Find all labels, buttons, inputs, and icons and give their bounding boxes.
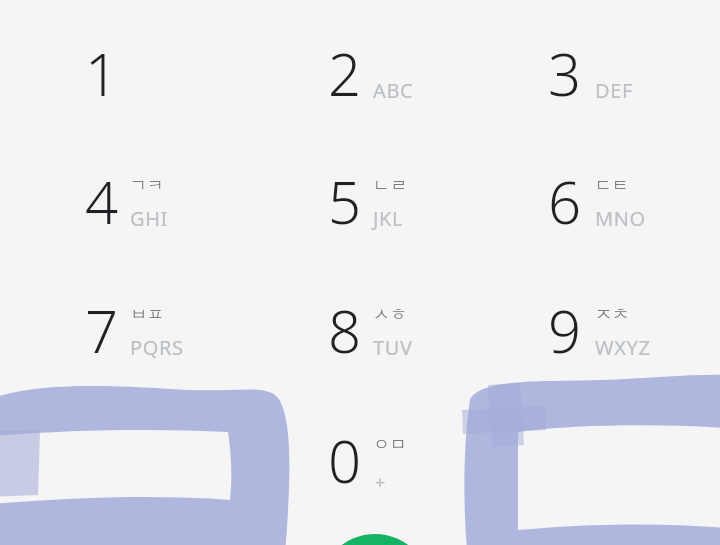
button[interactable] — [500, 398, 720, 526]
button[interactable] — [500, 139, 720, 267]
button[interactable] — [37, 398, 269, 526]
button[interactable] — [500, 268, 720, 396]
button[interactable] — [280, 139, 512, 267]
button[interactable] — [37, 139, 269, 267]
button[interactable] — [500, 11, 720, 139]
button[interactable]: Call — [319, 534, 431, 545]
button[interactable] — [280, 11, 512, 139]
button[interactable] — [37, 268, 269, 396]
button[interactable] — [280, 398, 512, 526]
button[interactable] — [37, 11, 269, 139]
button[interactable] — [280, 268, 512, 396]
